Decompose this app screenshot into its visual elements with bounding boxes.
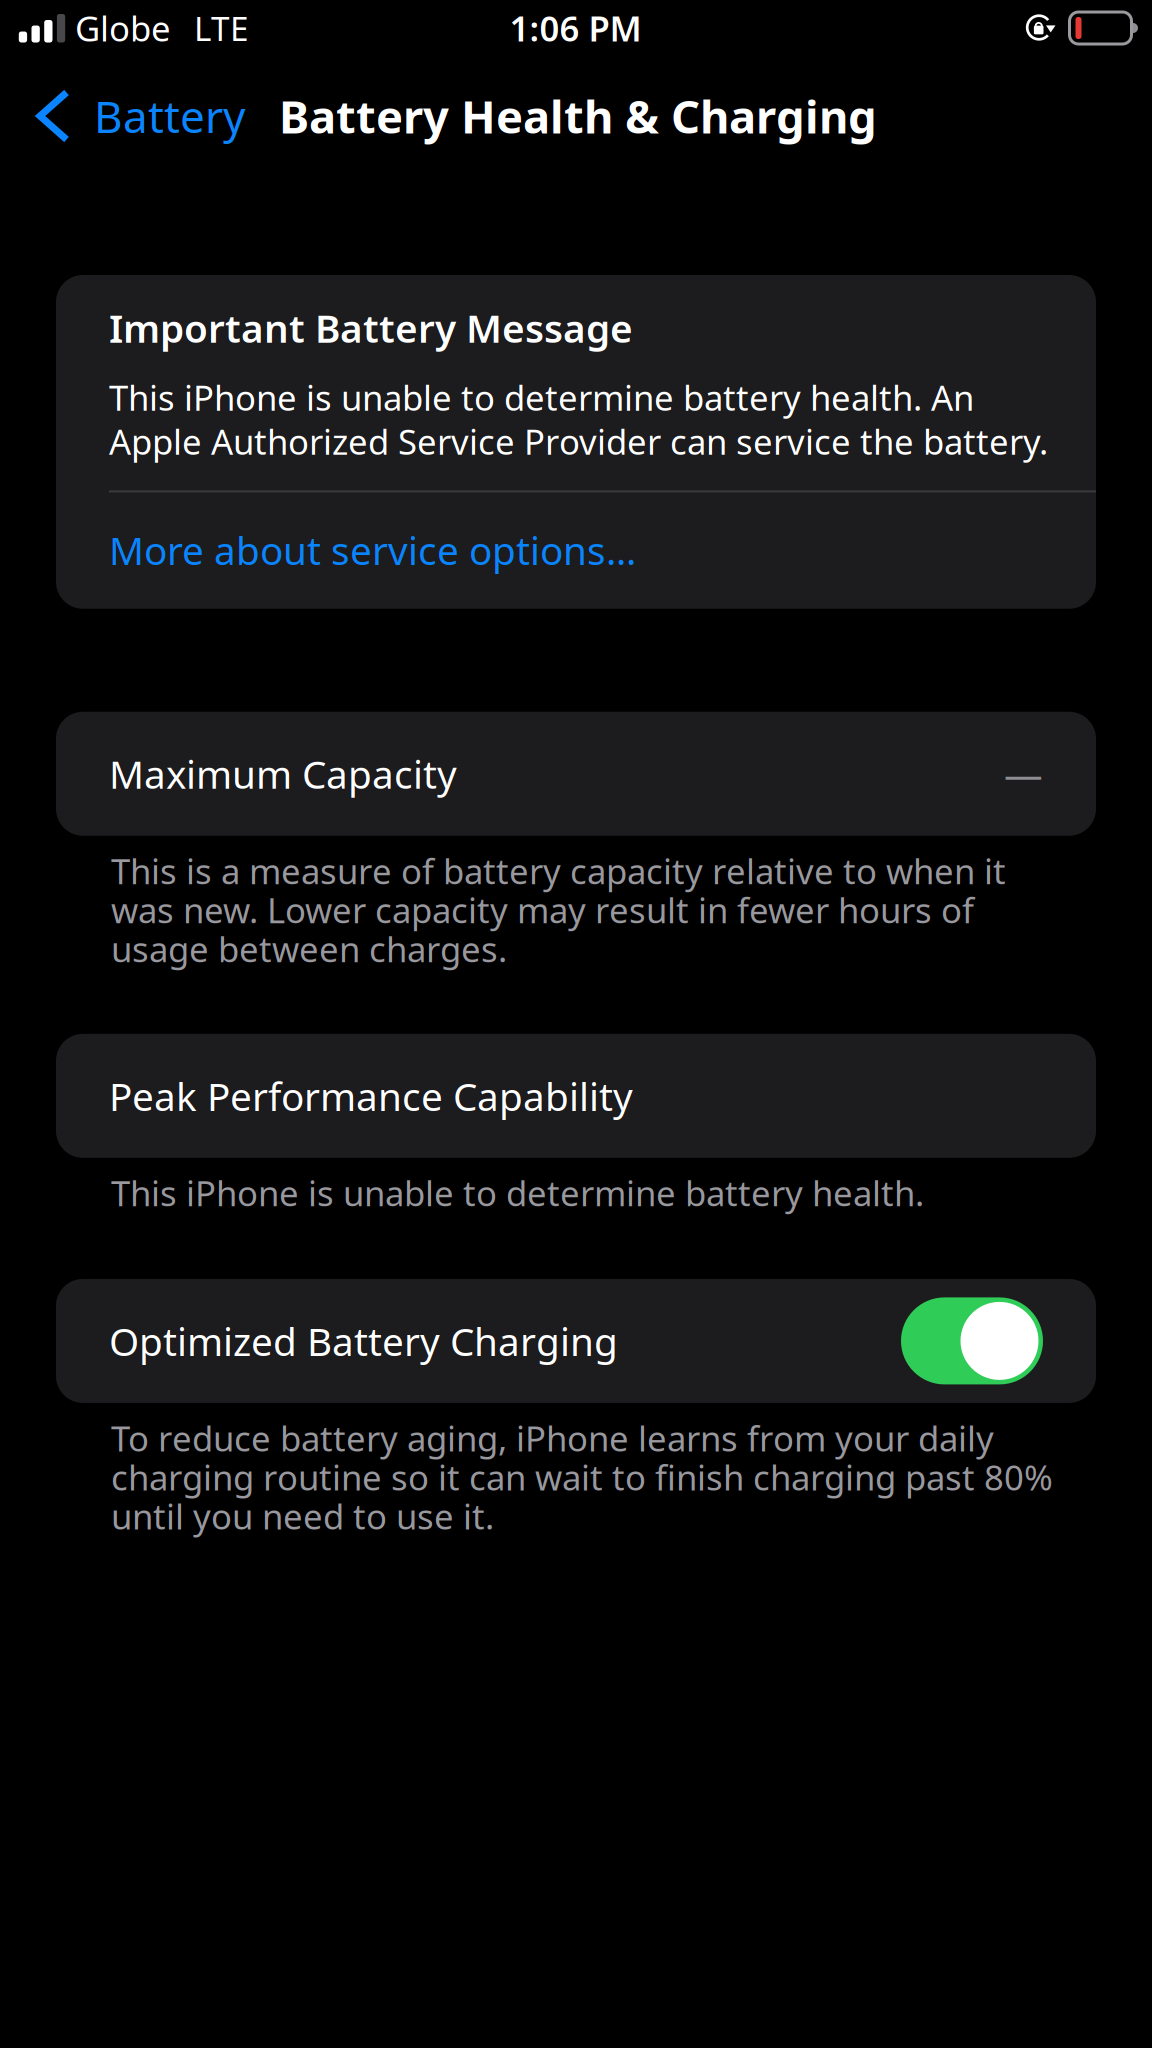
staticText: 1:06 PM bbox=[509, 5, 641, 51]
staticText: This iPhone is unable to determine batte… bbox=[111, 1170, 924, 1216]
staticText: More about service options... bbox=[109, 524, 636, 576]
staticText: Globe bbox=[75, 5, 171, 51]
staticText: LTE bbox=[194, 6, 249, 50]
button[interactable]: More about service options... bbox=[109, 492, 1059, 609]
button[interactable]: Maximum Capacity bbox=[56, 712, 1096, 836]
button[interactable]: Optimized Battery Charging, on bbox=[901, 1297, 1043, 1384]
button[interactable]: Battery bbox=[0, 72, 259, 160]
button[interactable]: Optimized Battery Charging bbox=[56, 1279, 1096, 1403]
button[interactable]: Peak Performance Capability bbox=[56, 1034, 1096, 1158]
staticText: — bbox=[1004, 748, 1043, 799]
staticText: Optimized Battery Charging bbox=[109, 1315, 618, 1366]
staticText: Battery bbox=[94, 87, 245, 145]
staticText: This iPhone is unable to determine batte… bbox=[109, 374, 1048, 464]
staticText: Peak Performance Capability bbox=[109, 1070, 633, 1121]
staticText: This is a measure of battery capacity re… bbox=[111, 848, 1006, 972]
staticText: Important Battery Message bbox=[109, 302, 633, 353]
staticText: Maximum Capacity bbox=[109, 748, 457, 799]
staticText: To reduce battery aging, iPhone learns f… bbox=[111, 1415, 1053, 1539]
staticText: Battery Health & Charging bbox=[279, 86, 877, 146]
